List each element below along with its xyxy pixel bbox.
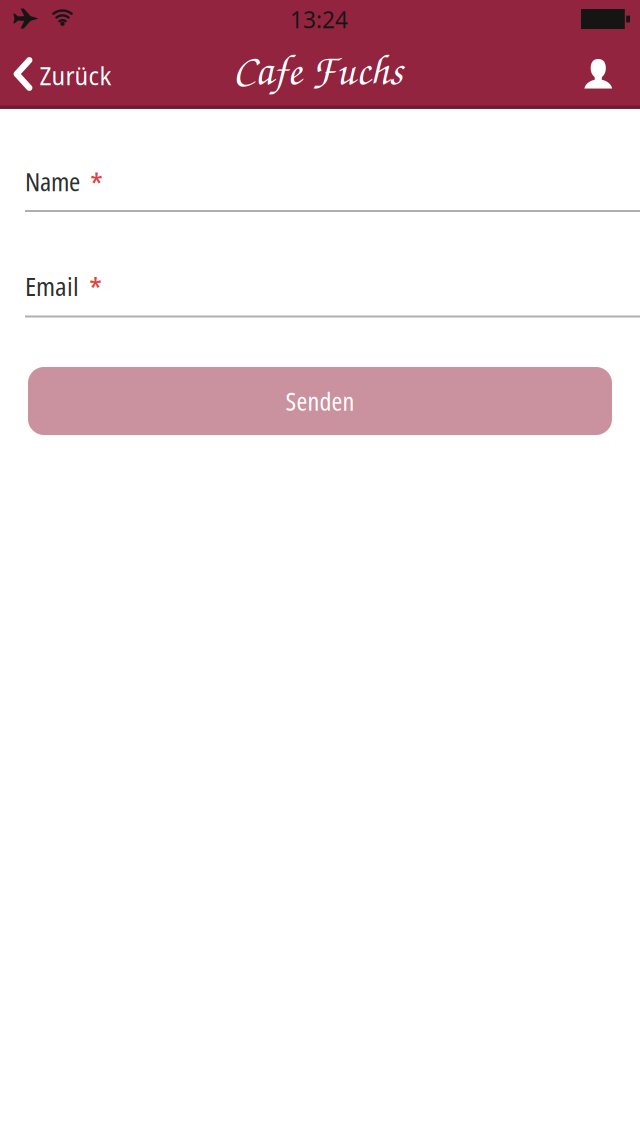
button[interactable]: Profil: [570, 46, 626, 101]
staticText: *: [90, 163, 103, 204]
button[interactable]: Senden: [28, 367, 612, 435]
staticText: Cafe Fuchs: [233, 40, 403, 96]
staticText: 13:24: [290, 4, 348, 35]
staticText: *: [89, 267, 102, 309]
button[interactable]: Zurück: [0, 46, 121, 102]
staticText: Email: [25, 269, 79, 303]
button[interactable]: Name: [25, 164, 103, 206]
staticText: Senden: [285, 384, 354, 418]
staticText: Name: [25, 164, 80, 199]
button[interactable]: Email: [25, 269, 102, 311]
staticText: Zurück: [39, 58, 111, 93]
